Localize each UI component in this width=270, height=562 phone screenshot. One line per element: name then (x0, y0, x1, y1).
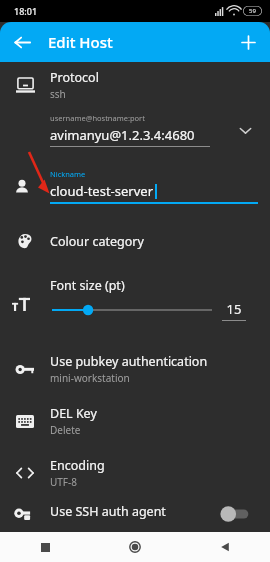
staticText: Use SSH auth agent (50, 503, 166, 520)
staticText: Use pubkey authentication (50, 353, 208, 370)
staticText: Nickname (50, 169, 86, 179)
button[interactable]: Back (6, 26, 38, 58)
button[interactable]: Home (90, 532, 180, 562)
staticText: avimanyu@1.2.3.4:4680 (50, 126, 195, 144)
staticText: Protocol (50, 69, 99, 86)
staticText: username@hostname:port (50, 113, 145, 123)
button[interactable]: Colour category (0, 223, 270, 259)
button[interactable]: Encoding (0, 447, 270, 499)
staticText: 15 (223, 300, 245, 318)
other: Expand (239, 124, 252, 137)
button[interactable]: Protocol (0, 62, 270, 108)
staticText: Encoding (50, 457, 105, 474)
button[interactable]: Recent apps (0, 532, 90, 562)
button[interactable]: Back (180, 532, 270, 562)
button[interactable]: Font size (pt) (0, 275, 270, 331)
staticText: Delete (50, 423, 81, 437)
staticText: cloud-test-server (50, 182, 154, 200)
staticText: 18:01 (14, 5, 38, 17)
button[interactable]: Nickname (0, 167, 270, 209)
staticText: ssh (50, 87, 66, 101)
staticText: Colour category (50, 233, 144, 250)
staticText: UTF-8 (50, 475, 77, 489)
button[interactable]: DEL Key (0, 395, 270, 447)
button[interactable]: Use pubkey authentication (0, 343, 270, 395)
staticText: 59 (249, 7, 256, 15)
staticText: mini-workstation (50, 371, 130, 385)
staticText: Font size (pt) (50, 277, 125, 294)
staticText: DEL Key (50, 405, 97, 422)
staticText: Edit Host (48, 32, 113, 52)
button[interactable]: Use SSH auth agent (0, 499, 270, 539)
button[interactable]: Add host (232, 26, 264, 58)
button[interactable]: username@hostname:port (0, 108, 270, 153)
